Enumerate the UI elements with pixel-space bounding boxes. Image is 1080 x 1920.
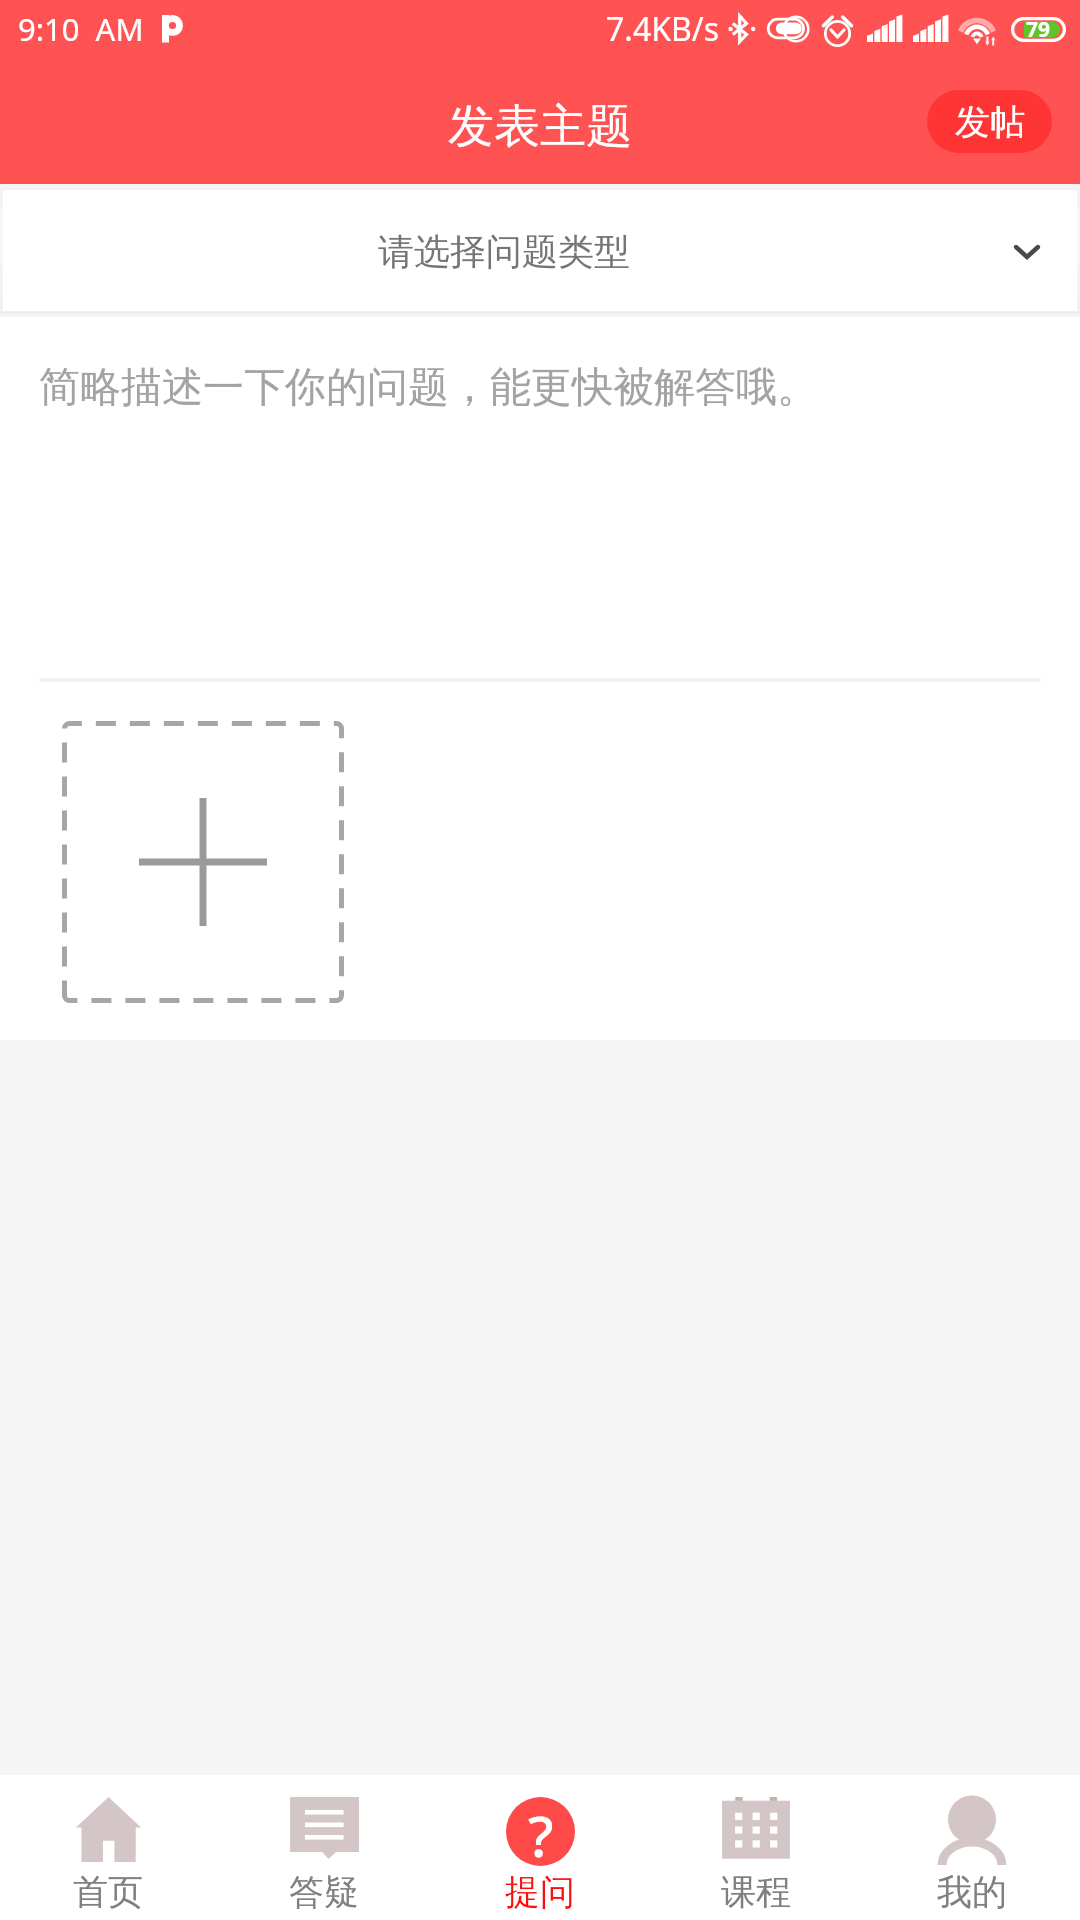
button[interactable]: Add photo [62,721,344,1003]
staticText: 9:10 AM [18,8,144,50]
button[interactable]: 课程 [648,1775,864,1920]
button[interactable]: 请选择问题类型 [3,190,1077,311]
staticText: ? [528,1796,554,1865]
staticText: 首页 [73,1870,143,1914]
staticText: 7.4KB/s [606,7,720,51]
button[interactable]: 发帖 [927,90,1052,153]
staticText: 简略描述一下你的问题，能更快被解答哦。 [39,362,818,414]
staticText: 请选择问题类型 [378,229,630,274]
staticText: 我的 [937,1870,1007,1914]
staticText: 发帖 [955,100,1025,144]
button[interactable]: 答疑 [216,1775,432,1920]
button[interactable]: 首页 [0,1775,216,1920]
button[interactable]: ? [432,1775,648,1920]
staticText: 发表主题 [448,98,632,156]
button[interactable]: 我的 [864,1775,1080,1920]
staticText: 79 [1026,15,1051,44]
staticText: 课程 [721,1870,791,1914]
staticText: 答疑 [289,1870,359,1914]
staticText: 提问 [505,1870,575,1914]
